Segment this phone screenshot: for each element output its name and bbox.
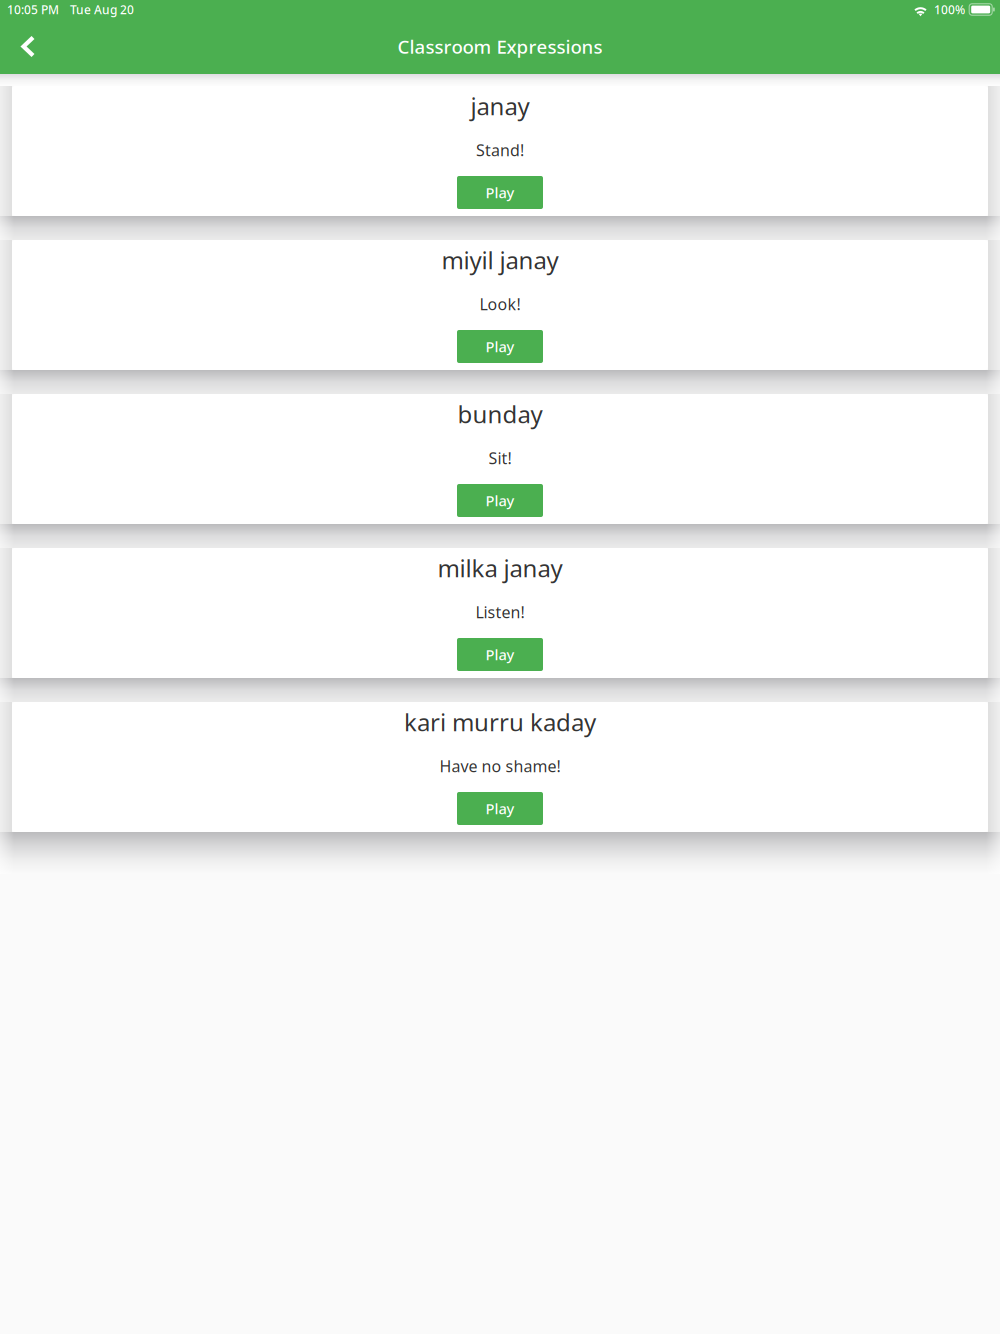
staticText: Look! [479, 293, 520, 315]
staticText: bunday [457, 398, 542, 430]
staticText: Play [485, 491, 514, 510]
button[interactable]: Play [457, 638, 543, 671]
button[interactable]: Play [457, 484, 543, 517]
button[interactable]: Back [0, 28, 56, 64]
staticText: miyil janay [441, 244, 558, 276]
staticText: Listen! [475, 601, 524, 623]
staticText: 100% [934, 1, 965, 17]
staticText: janay [470, 90, 529, 122]
staticText: milka janay [437, 552, 562, 584]
staticText: Have no shame! [439, 755, 560, 777]
staticText: Tue Aug 20 [70, 1, 134, 17]
staticText: Play [485, 645, 514, 664]
staticText: Sit! [488, 447, 511, 469]
staticText: Classroom Expressions [397, 34, 602, 59]
staticText: kari murru kaday [404, 706, 596, 738]
staticText: Play [485, 799, 514, 818]
staticText: Play [485, 183, 514, 202]
button[interactable]: Play [457, 792, 543, 825]
button[interactable]: Play [457, 330, 543, 363]
staticText: Stand! [476, 139, 524, 161]
staticText: 10:05 PM [7, 1, 59, 17]
button[interactable]: Play [457, 176, 543, 209]
staticText: Play [485, 337, 514, 356]
